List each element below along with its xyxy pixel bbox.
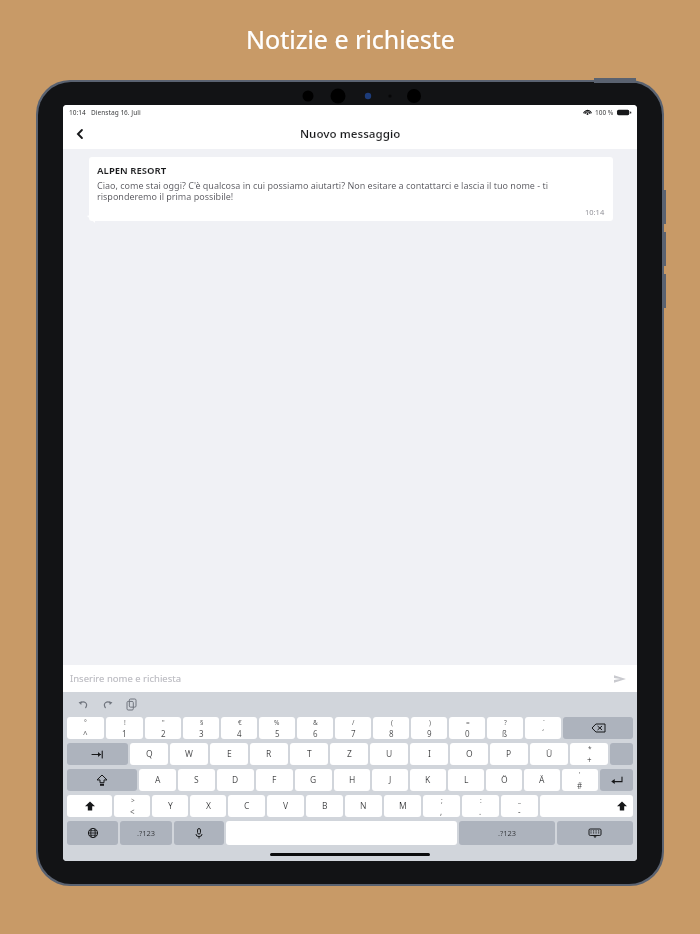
button[interactable]: § [183, 717, 219, 739]
button[interactable]: .?123 [459, 821, 555, 845]
button[interactable]: J [372, 769, 408, 791]
button[interactable]: W [170, 743, 208, 765]
staticText: L [464, 774, 469, 786]
button[interactable]: Return [600, 769, 633, 791]
button[interactable]: Language [67, 821, 118, 845]
button[interactable]: E [210, 743, 248, 765]
button[interactable]: * [570, 743, 608, 765]
button[interactable]: I [410, 743, 448, 765]
button[interactable]: ) [411, 717, 447, 739]
button[interactable]: F [256, 769, 293, 791]
staticText: U [386, 748, 393, 760]
button[interactable]: G [295, 769, 332, 791]
staticText: C [244, 800, 250, 812]
staticText: , [440, 806, 443, 817]
staticText: - [518, 806, 521, 817]
button[interactable]: > [114, 795, 150, 817]
button[interactable]: Back [65, 119, 95, 149]
button[interactable]: / [335, 717, 371, 739]
button[interactable]: = [449, 717, 485, 739]
button[interactable]: & [297, 717, 333, 739]
staticText: ´ [542, 728, 545, 739]
button[interactable]: Y [152, 795, 188, 817]
button[interactable]: B [306, 795, 343, 817]
staticText: 2 [161, 728, 166, 739]
button[interactable]: Key [610, 743, 633, 765]
button[interactable]: .?123 [120, 821, 172, 845]
staticText: ( [391, 718, 393, 727]
button[interactable]: Shift [540, 795, 633, 817]
button[interactable]: % [259, 717, 295, 739]
button[interactable]: ? [487, 717, 523, 739]
button[interactable]: Undo [73, 694, 93, 714]
button[interactable]: K [410, 769, 446, 791]
staticText: H [349, 774, 356, 786]
button[interactable]: € [221, 717, 257, 739]
staticText: V [283, 800, 289, 812]
button[interactable]: T [290, 743, 328, 765]
button[interactable]: ALPEN RESORT [89, 157, 613, 221]
button[interactable]: Tab [67, 743, 128, 765]
staticText: X [206, 800, 211, 812]
button[interactable]: Send [610, 669, 630, 689]
staticText: Z [347, 748, 352, 760]
staticText: W [185, 748, 193, 760]
button[interactable]: A [139, 769, 176, 791]
button[interactable]: H [334, 769, 370, 791]
button[interactable]: M [384, 795, 421, 817]
staticText: Nuovo messaggio [300, 126, 401, 142]
staticText: 3 [199, 728, 204, 739]
button[interactable]: Shift [67, 795, 112, 817]
button[interactable]: Ü [530, 743, 568, 765]
staticText: .?123 [137, 828, 156, 838]
staticText: R [266, 748, 272, 760]
staticText: F [272, 774, 277, 786]
button[interactable]: C [228, 795, 265, 817]
button[interactable]: Caps lock [67, 769, 137, 791]
button[interactable]: Paste [121, 694, 141, 714]
staticText: & [313, 718, 318, 727]
button[interactable]: X [190, 795, 226, 817]
button[interactable]: N [345, 795, 382, 817]
button[interactable]: ( [373, 717, 409, 739]
button[interactable]: S [178, 769, 215, 791]
staticText: Y [168, 800, 173, 812]
staticText: Ä [539, 774, 545, 786]
button[interactable]: Redo [97, 694, 117, 714]
button[interactable]: L [448, 769, 484, 791]
button[interactable]: ! [106, 717, 143, 739]
button[interactable]: Ö [486, 769, 522, 791]
button[interactable]: V [267, 795, 304, 817]
staticText: 0 [465, 728, 470, 739]
staticText: .?123 [498, 828, 517, 838]
button[interactable]: Inserire nome e richiesta [63, 665, 637, 692]
button[interactable]: R [250, 743, 288, 765]
staticText: > [131, 796, 135, 805]
button[interactable]: Z [330, 743, 368, 765]
button[interactable]: P [490, 743, 528, 765]
button[interactable]: ` [525, 717, 561, 739]
button[interactable]: D [217, 769, 254, 791]
button[interactable]: ; [423, 795, 460, 817]
button[interactable]: U [370, 743, 408, 765]
staticText: 100 % [595, 108, 614, 117]
button[interactable]: Ä [524, 769, 560, 791]
button[interactable]: " [145, 717, 181, 739]
button[interactable]: O [450, 743, 488, 765]
button[interactable]: _ [501, 795, 538, 817]
button[interactable]: : [462, 795, 499, 817]
staticText: Q [146, 748, 153, 760]
staticText: Dienstag 16. Juli [91, 108, 141, 117]
staticText: T [307, 748, 312, 760]
button[interactable]: Q [130, 743, 168, 765]
button[interactable]: Hide keyboard [557, 821, 633, 845]
button[interactable]: ° [67, 717, 104, 739]
staticText: 9 [427, 728, 432, 739]
staticText: G [310, 774, 317, 786]
staticText: Ü [546, 748, 553, 760]
button[interactable]: ' [562, 769, 598, 791]
button[interactable]: Backspace [563, 717, 633, 739]
staticText: " [162, 718, 165, 727]
button[interactable]: Dictation [174, 821, 224, 845]
